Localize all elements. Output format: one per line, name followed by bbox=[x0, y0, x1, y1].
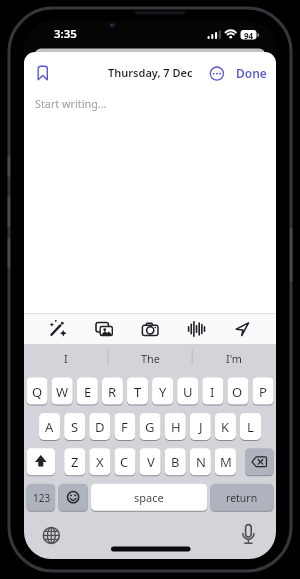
staticText: P bbox=[259, 383, 267, 401]
button[interactable] bbox=[227, 378, 248, 405]
button[interactable] bbox=[27, 484, 56, 511]
button[interactable] bbox=[165, 413, 186, 440]
button[interactable] bbox=[91, 484, 207, 511]
button[interactable] bbox=[202, 378, 223, 405]
staticText: E bbox=[84, 383, 92, 401]
staticText: I'm bbox=[226, 351, 242, 366]
button[interactable] bbox=[127, 378, 148, 405]
button[interactable] bbox=[27, 378, 48, 405]
staticText: N bbox=[196, 453, 206, 471]
staticText: W bbox=[56, 383, 69, 401]
button[interactable] bbox=[89, 413, 110, 440]
staticText: space bbox=[134, 490, 164, 505]
button[interactable] bbox=[139, 413, 160, 440]
staticText: Y bbox=[159, 383, 167, 401]
button[interactable] bbox=[240, 413, 261, 440]
staticText: I bbox=[64, 351, 68, 366]
staticText: C bbox=[120, 453, 129, 471]
button[interactable] bbox=[215, 448, 236, 475]
staticText: A bbox=[45, 418, 54, 436]
button[interactable] bbox=[226, 314, 260, 344]
button[interactable] bbox=[52, 378, 73, 405]
button[interactable] bbox=[252, 378, 273, 405]
staticText: 3:35 bbox=[54, 26, 77, 42]
staticText: B bbox=[171, 453, 180, 471]
staticText: V bbox=[147, 453, 155, 471]
staticText: The bbox=[141, 351, 160, 366]
staticText: 123 bbox=[33, 491, 51, 505]
button[interactable] bbox=[207, 62, 228, 85]
button[interactable] bbox=[27, 448, 56, 475]
staticText: K bbox=[221, 418, 230, 436]
button[interactable] bbox=[190, 448, 211, 475]
staticText: H bbox=[171, 418, 181, 436]
button[interactable] bbox=[38, 521, 65, 550]
staticText: Q bbox=[32, 383, 43, 401]
button[interactable] bbox=[114, 413, 135, 440]
button[interactable] bbox=[215, 413, 236, 440]
staticText: X bbox=[96, 453, 104, 471]
staticText: Start writing... bbox=[35, 96, 107, 111]
button[interactable] bbox=[39, 413, 60, 440]
staticText: F bbox=[121, 418, 128, 436]
button[interactable] bbox=[77, 378, 98, 405]
button[interactable] bbox=[235, 521, 262, 550]
button[interactable] bbox=[24, 344, 108, 374]
staticText: T bbox=[134, 383, 142, 401]
button[interactable] bbox=[152, 378, 173, 405]
staticText: Z bbox=[71, 453, 79, 471]
staticText: O bbox=[232, 383, 243, 401]
button[interactable] bbox=[87, 314, 121, 344]
button[interactable] bbox=[231, 61, 272, 85]
staticText: R bbox=[108, 383, 117, 401]
staticText: L bbox=[247, 418, 254, 436]
staticText: return bbox=[226, 491, 258, 505]
button[interactable] bbox=[40, 314, 74, 344]
button[interactable] bbox=[192, 344, 276, 374]
button[interactable] bbox=[58, 484, 87, 511]
button[interactable] bbox=[64, 448, 85, 475]
button[interactable] bbox=[140, 448, 161, 475]
button[interactable] bbox=[177, 378, 198, 405]
button[interactable] bbox=[108, 344, 192, 374]
button[interactable] bbox=[89, 448, 110, 475]
staticText: D bbox=[95, 418, 105, 436]
button[interactable] bbox=[102, 378, 123, 405]
button[interactable] bbox=[114, 448, 135, 475]
staticText: M bbox=[220, 453, 232, 471]
button[interactable] bbox=[245, 448, 274, 475]
button[interactable] bbox=[210, 484, 273, 511]
button[interactable] bbox=[33, 60, 53, 85]
staticText: Done bbox=[236, 65, 267, 81]
button[interactable] bbox=[180, 314, 214, 344]
staticText: S bbox=[71, 418, 79, 436]
staticText: Thursday, 7 Dec bbox=[108, 65, 193, 80]
button[interactable] bbox=[133, 314, 167, 344]
button[interactable] bbox=[64, 413, 85, 440]
button[interactable] bbox=[165, 448, 186, 475]
staticText: G bbox=[145, 418, 155, 436]
staticText: U bbox=[183, 383, 193, 401]
staticText: I bbox=[210, 383, 215, 401]
button[interactable] bbox=[190, 413, 211, 440]
staticText: J bbox=[199, 418, 203, 436]
staticText: 94 bbox=[244, 30, 254, 40]
